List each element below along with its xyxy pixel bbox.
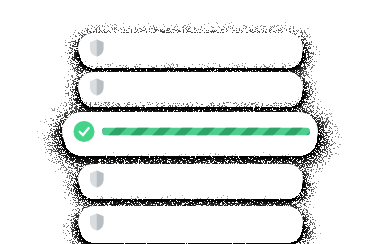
button[interactable]: Protection item 4	[78, 164, 303, 194]
button[interactable]: Protection item 2	[78, 72, 303, 102]
button[interactable]: Protection item 1	[78, 33, 303, 63]
button[interactable]: Protection item 5	[78, 206, 303, 238]
button[interactable]: Scan complete, progress bar	[62, 112, 318, 151]
